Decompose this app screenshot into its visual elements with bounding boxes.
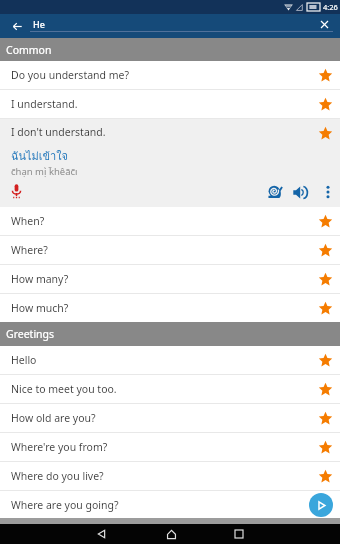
staticText: ฉันไม่เข้าใจ <box>11 147 69 164</box>
staticText: He <box>33 18 45 30</box>
staticText: Hello <box>11 353 37 367</box>
button[interactable]: Where are you going? <box>0 491 340 518</box>
button[interactable]: How much? <box>0 294 340 322</box>
button[interactable]: Nice to meet you too. <box>0 375 340 403</box>
button[interactable]: Do you understand me? <box>0 61 340 89</box>
button[interactable]: Home <box>156 524 186 544</box>
button[interactable]: Play sound <box>292 182 312 202</box>
staticText: c̄hạn mị̀ k̄hêāc̄ı <box>11 165 78 178</box>
staticText: How much? <box>11 301 69 315</box>
button[interactable]: Record <box>7 183 25 201</box>
button[interactable]: Slow speech <box>264 182 284 202</box>
button[interactable]: Back <box>86 524 116 544</box>
button[interactable]: Hello <box>0 346 340 374</box>
button[interactable]: Back <box>5 14 29 38</box>
staticText: Where're you from? <box>11 440 108 454</box>
button[interactable]: Clear search <box>312 12 336 36</box>
staticText: I understand. <box>11 97 78 111</box>
staticText: When? <box>11 214 45 228</box>
staticText: Where do you live? <box>11 469 104 483</box>
button[interactable]: Where do you live? <box>0 462 340 490</box>
staticText: Where? <box>11 243 48 257</box>
button[interactable]: How old are you? <box>0 404 340 432</box>
button[interactable]: Where're you from? <box>0 433 340 461</box>
button[interactable]: I don't understand. <box>0 119 340 207</box>
button[interactable]: More options <box>320 184 336 200</box>
staticText: Common <box>6 43 52 57</box>
button[interactable]: I understand. <box>0 90 340 118</box>
staticText: I don't understand. <box>11 125 106 139</box>
staticText: How many? <box>11 272 69 286</box>
button[interactable]: When? <box>0 207 340 235</box>
button[interactable]: How many? <box>0 265 340 293</box>
staticText: Nice to meet you too. <box>11 382 117 396</box>
button[interactable]: Recent apps <box>224 524 254 544</box>
staticText: How old are you? <box>11 411 96 425</box>
button[interactable]: Where? <box>0 236 340 264</box>
staticText: 4:26 <box>323 2 338 12</box>
staticText: Greetings <box>6 327 55 341</box>
staticText: Do you understand me? <box>11 68 130 82</box>
staticText: Where are you going? <box>11 498 119 512</box>
button[interactable]: Play all <box>309 493 333 517</box>
